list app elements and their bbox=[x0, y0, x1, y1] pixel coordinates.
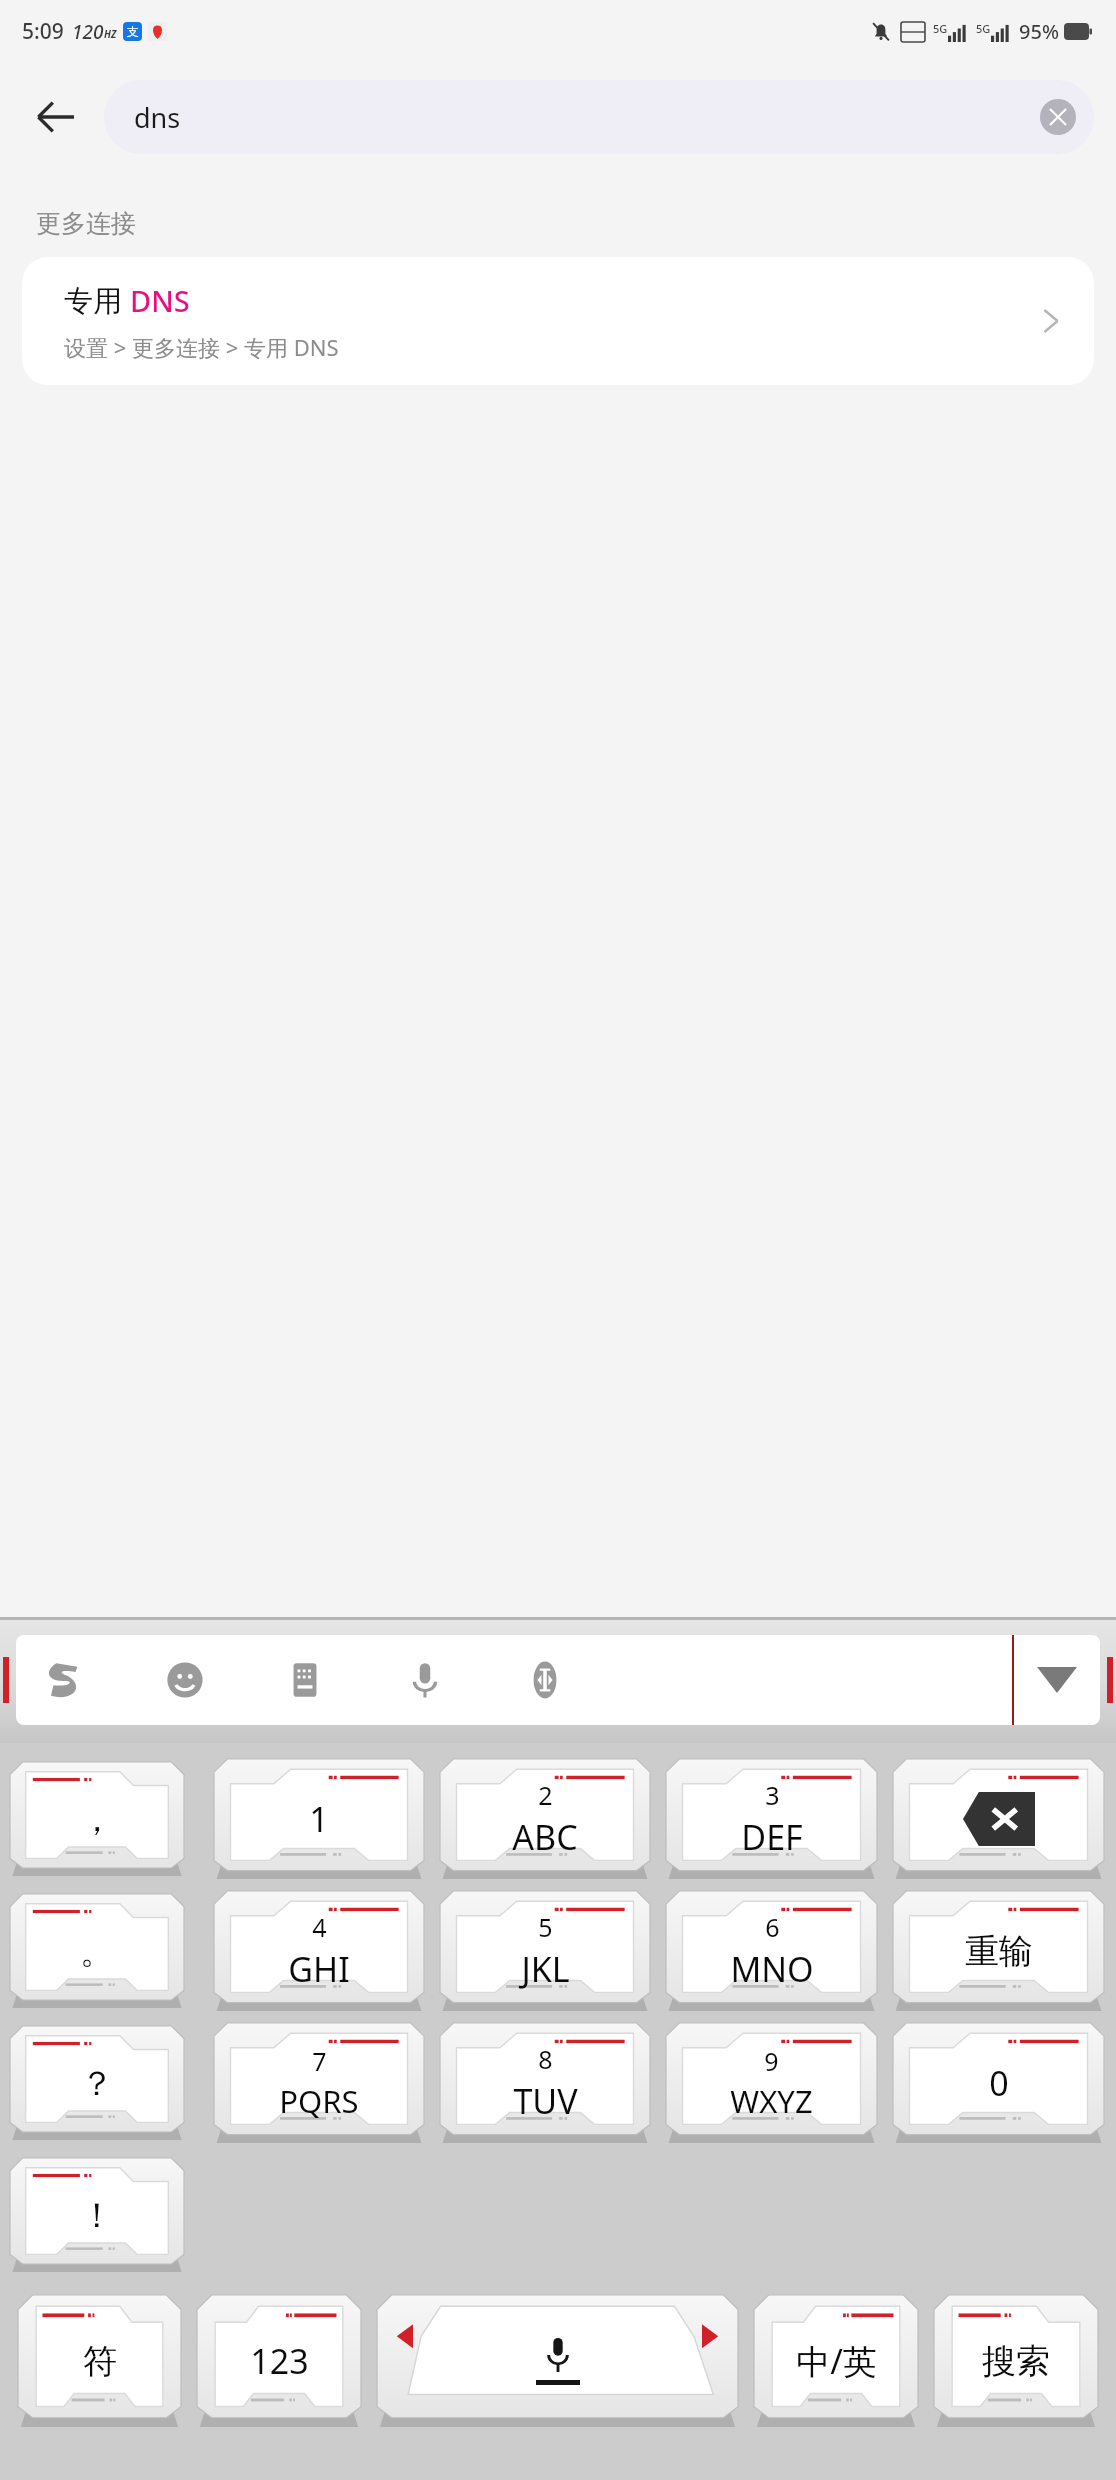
button[interactable]: ！ bbox=[10, 2158, 184, 2272]
staticText: 4 bbox=[312, 1910, 327, 1944]
button[interactable]: ？ bbox=[10, 2026, 184, 2140]
staticText: PQRS bbox=[279, 2080, 359, 2122]
staticText: 5G bbox=[933, 21, 948, 36]
staticText: ！ bbox=[80, 2194, 114, 2237]
staticText: 中/英 bbox=[796, 2338, 877, 2384]
button[interactable]: Backspace bbox=[893, 1759, 1104, 1879]
staticText: WXYZ bbox=[730, 2080, 813, 2122]
button[interactable]: 123 bbox=[197, 2295, 361, 2427]
staticText: 95% bbox=[1019, 18, 1059, 45]
button[interactable]: 符 bbox=[18, 2295, 181, 2427]
staticText: 5G bbox=[976, 21, 991, 36]
staticText: 3 bbox=[765, 1778, 780, 1812]
staticText: 123 bbox=[250, 2338, 309, 2384]
staticText: 。 bbox=[80, 1930, 114, 1973]
staticText: 专用 bbox=[64, 280, 130, 320]
button[interactable]: 9 bbox=[666, 2023, 877, 2143]
staticText: DEF bbox=[741, 1814, 803, 1860]
button[interactable]: Keyboard layout bbox=[274, 1649, 336, 1711]
staticText: 更多连接 bbox=[36, 208, 136, 239]
button[interactable]: 6 bbox=[666, 1891, 877, 2011]
button[interactable]: Voice input bbox=[394, 1649, 456, 1711]
staticText: HZ bbox=[104, 27, 117, 41]
staticText: 5:09 bbox=[22, 17, 64, 46]
button[interactable]: Text edit bbox=[514, 1649, 576, 1711]
button[interactable]: 专用 bbox=[22, 257, 1094, 385]
button[interactable]: dns bbox=[104, 80, 1094, 154]
staticText: GHI bbox=[288, 1946, 350, 1992]
staticText: DNS bbox=[130, 281, 190, 320]
button[interactable]: 0 bbox=[893, 2023, 1104, 2143]
staticText: ABC bbox=[512, 1814, 578, 1860]
button[interactable]: 7 bbox=[214, 2023, 424, 2143]
staticText: 120 bbox=[72, 19, 104, 45]
button[interactable]: Back bbox=[8, 69, 104, 165]
staticText: 8 bbox=[538, 2042, 553, 2076]
staticText: 7 bbox=[312, 2044, 327, 2078]
staticText: 2 bbox=[538, 1778, 553, 1812]
staticText: dns bbox=[134, 99, 181, 136]
staticText: 重输 bbox=[965, 1930, 1033, 1973]
button[interactable]: 。 bbox=[10, 1894, 184, 2008]
button[interactable]: 重输 bbox=[893, 1891, 1104, 2011]
staticText: ， bbox=[80, 1798, 114, 1841]
button[interactable]: Clear bbox=[1040, 99, 1076, 135]
button[interactable]: 2 bbox=[440, 1759, 650, 1879]
button[interactable]: 3 bbox=[666, 1759, 877, 1879]
button[interactable]: Emoji bbox=[154, 1649, 216, 1711]
staticText: 符 bbox=[83, 2340, 117, 2383]
button[interactable]: 1 bbox=[214, 1759, 424, 1879]
button[interactable]: Hide keyboard bbox=[1014, 1635, 1100, 1725]
staticText: ？ bbox=[80, 2062, 114, 2105]
staticText: 6 bbox=[765, 1910, 780, 1944]
button[interactable]: Space bbox=[377, 2295, 738, 2427]
staticText: TUV bbox=[513, 2078, 578, 2124]
staticText: 9 bbox=[764, 2044, 779, 2078]
staticText: MNO bbox=[730, 1946, 814, 1992]
button[interactable]: 5 bbox=[440, 1891, 650, 2011]
staticText: 支 bbox=[127, 24, 139, 39]
button[interactable]: 中/英 bbox=[754, 2295, 918, 2427]
button[interactable]: 搜索 bbox=[934, 2295, 1098, 2427]
staticText: 搜索 bbox=[982, 2340, 1050, 2383]
staticText: 设置 > 更多连接 > 专用 DNS bbox=[64, 332, 339, 362]
staticText: 5 bbox=[538, 1910, 553, 1944]
button[interactable]: 8 bbox=[440, 2023, 650, 2143]
button[interactable]: 4 bbox=[214, 1891, 424, 2011]
staticText: JKL bbox=[521, 1946, 570, 1992]
staticText: 0 bbox=[989, 2060, 1009, 2106]
button[interactable]: Sogou IME bbox=[34, 1649, 96, 1711]
staticText: 1 bbox=[309, 1796, 329, 1842]
button[interactable]: ， bbox=[10, 1762, 184, 1876]
